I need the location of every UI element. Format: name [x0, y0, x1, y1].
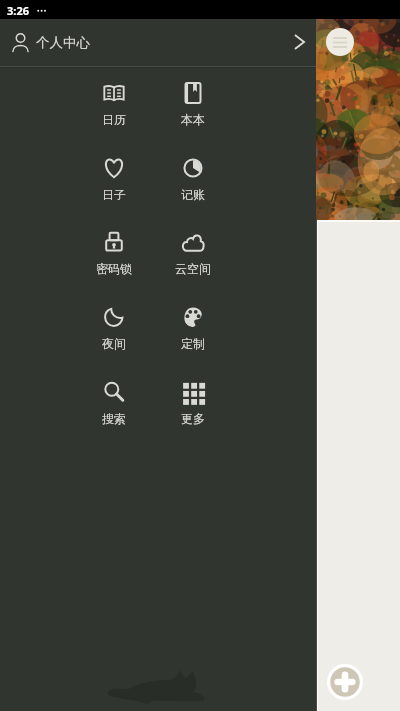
staticText: 日子 [102, 187, 126, 202]
button[interactable]: 更多 [153, 378, 233, 432]
button[interactable]: Open navigation menu [326, 28, 354, 56]
button[interactable]: 本本 [153, 79, 233, 133]
button[interactable]: 搜索 [74, 378, 154, 432]
staticText: 本本 [181, 112, 205, 127]
staticText: 记账 [181, 187, 205, 202]
staticText: 搜索 [102, 411, 126, 426]
staticText: 定制 [181, 336, 205, 351]
staticText: 云空间 [175, 261, 211, 276]
button[interactable]: 夜间 [74, 303, 154, 357]
staticText: 个人中心 [36, 34, 90, 51]
button[interactable]: 个人中心 [0, 19, 316, 65]
button[interactable]: 日子 [74, 154, 154, 208]
button[interactable]: Add new entry [327, 664, 363, 700]
staticText: 3:26 [7, 3, 29, 18]
button[interactable]: 定制 [153, 303, 233, 357]
button[interactable]: 密码锁 [74, 228, 154, 282]
staticText: 夜间 [102, 336, 126, 351]
staticText: 密码锁 [96, 261, 132, 276]
button[interactable]: 记账 [153, 154, 233, 208]
staticText: 日历 [102, 112, 126, 127]
button[interactable]: 云空间 [153, 228, 233, 282]
button[interactable]: 日历 [74, 79, 154, 133]
staticText: 更多 [181, 411, 205, 426]
